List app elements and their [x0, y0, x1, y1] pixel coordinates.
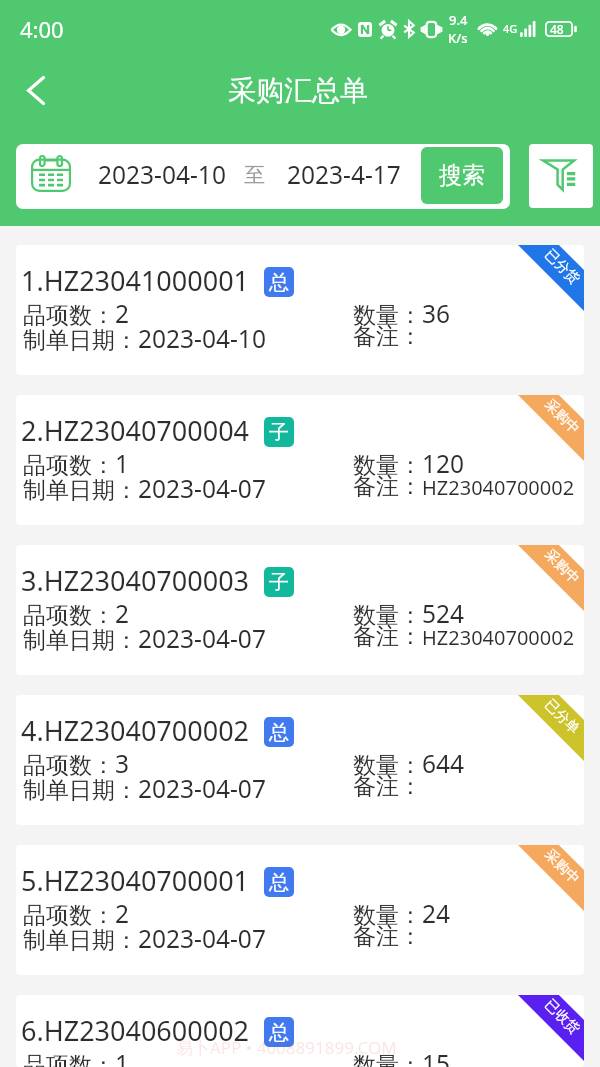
staticText: 2 — [115, 897, 130, 930]
staticText: 2023-04-07 — [138, 622, 266, 655]
button[interactable]: 采购中 — [16, 395, 584, 525]
staticText: 1 — [115, 1047, 130, 1067]
staticText: 子 — [269, 570, 289, 595]
staticText: 已分货 — [541, 246, 583, 288]
staticText: HZ23040700002 — [422, 624, 575, 651]
staticText: 数量： — [353, 1051, 422, 1067]
staticText: 48 — [550, 21, 564, 37]
staticText: 数量： — [353, 751, 422, 780]
staticText: 备注： — [353, 922, 422, 951]
button[interactable]: 2023-4-17 — [287, 158, 401, 191]
staticText: 易卜APP • 4008891899.COM — [176, 1036, 397, 1059]
button[interactable]: Filter — [529, 144, 593, 208]
staticText: 6.HZ23040600002 — [21, 1012, 250, 1049]
button[interactable]: 采购中 — [16, 545, 584, 675]
staticText: 品项数： — [23, 751, 115, 780]
staticText: 品项数： — [23, 301, 115, 330]
staticText: 1 — [115, 447, 130, 480]
staticText: 2023-04-07 — [138, 472, 266, 505]
staticText: 采购中 — [541, 396, 583, 438]
button[interactable]: Pick date — [16, 144, 86, 209]
staticText: 品项数： — [23, 451, 115, 480]
staticText: 4G — [503, 21, 518, 36]
staticText: 数量： — [353, 601, 422, 630]
staticText: 制单日期： — [23, 476, 138, 505]
staticText: 至 — [244, 162, 265, 188]
staticText: 已收货 — [541, 996, 583, 1038]
staticText: 2023-04-07 — [138, 922, 266, 955]
button[interactable]: 搜索 — [421, 147, 503, 204]
staticText: 2 — [115, 297, 130, 330]
button[interactable]: 已收货 — [16, 995, 584, 1067]
staticText: 已分单 — [541, 696, 583, 738]
staticText: 数量： — [353, 901, 422, 930]
button[interactable]: 2023-04-10 — [98, 158, 226, 191]
staticText: 采购中 — [541, 546, 583, 588]
staticText: 24 — [422, 897, 451, 930]
staticText: 采购汇总单 — [228, 73, 368, 108]
staticText: 1.HZ23041000001 — [21, 262, 250, 299]
staticText: K/s — [448, 29, 468, 47]
staticText: 总 — [269, 270, 289, 295]
staticText: 3 — [115, 747, 130, 780]
staticText: 搜索 — [439, 161, 485, 190]
staticText: 总 — [269, 1020, 289, 1045]
staticText: 524 — [422, 597, 465, 630]
staticText: 2023-04-10 — [138, 322, 266, 355]
staticText: 5.HZ23040700001 — [21, 862, 250, 899]
staticText: 2023-04-07 — [138, 772, 266, 805]
staticText: 备注： — [353, 772, 422, 801]
staticText: 总 — [269, 870, 289, 895]
staticText: 644 — [422, 747, 465, 780]
button[interactable]: Back — [7, 61, 65, 119]
staticText: 制单日期： — [23, 326, 138, 355]
staticText: 数量： — [353, 451, 422, 480]
staticText: 120 — [422, 447, 465, 480]
button[interactable]: 采购中 — [16, 845, 584, 975]
staticText: 3.HZ23040700003 — [21, 562, 250, 599]
staticText: 制单日期： — [23, 626, 138, 655]
staticText: 制单日期： — [23, 926, 138, 955]
staticText: 数量： — [353, 301, 422, 330]
button[interactable]: 已分货 — [16, 245, 584, 375]
staticText: 2 — [115, 597, 130, 630]
staticText: 备注： — [353, 622, 422, 651]
staticText: 子 — [269, 420, 289, 445]
staticText: 4:00 — [20, 14, 64, 44]
staticText: 4.HZ23040700002 — [21, 712, 250, 749]
staticText: 品项数： — [23, 1051, 115, 1067]
staticText: HZ23040700002 — [422, 474, 575, 501]
staticText: 品项数： — [23, 901, 115, 930]
staticText: 制单日期： — [23, 776, 138, 805]
staticText: 总 — [269, 720, 289, 745]
staticText: 9.4 — [449, 11, 468, 29]
staticText: 备注： — [353, 472, 422, 501]
staticText: 36 — [422, 297, 451, 330]
staticText: 15 — [422, 1047, 451, 1067]
staticText: 采购中 — [541, 846, 583, 888]
button[interactable]: 已分单 — [16, 695, 584, 825]
staticText: 2.HZ23040700004 — [21, 412, 250, 449]
staticText: 备注： — [353, 322, 422, 351]
staticText: 品项数： — [23, 601, 115, 630]
